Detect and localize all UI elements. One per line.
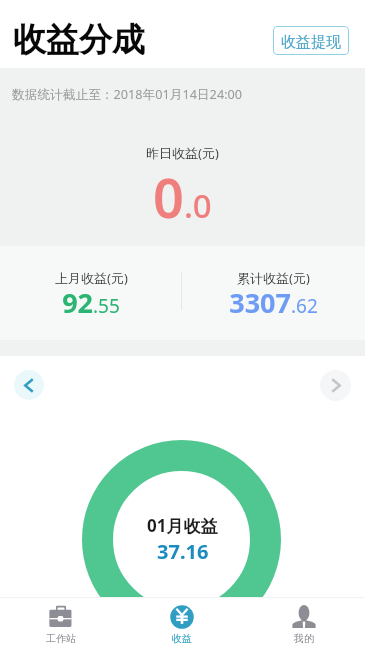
button[interactable]: 我的: [243, 597, 365, 650]
staticText: 工作站: [46, 632, 76, 645]
staticText: 累计收益(元): [237, 269, 310, 287]
button[interactable]: 收益提现: [273, 26, 349, 55]
staticText: 01月收益: [147, 514, 218, 537]
staticText: 昨日收益(元): [146, 144, 219, 162]
button[interactable]: Previous month: [14, 370, 44, 400]
staticText: 3307.62: [229, 284, 318, 321]
staticText: 我的: [294, 632, 314, 645]
staticText: 数据统计截止至：2018年01月14日24:00: [12, 85, 243, 102]
staticText: 92.55: [62, 284, 120, 321]
staticText: 37.16: [157, 538, 209, 565]
staticText: 上月收益(元): [55, 269, 128, 287]
staticText: 收益分成: [13, 19, 145, 61]
button[interactable]: 收益: [121, 597, 243, 650]
staticText: 0.0: [153, 160, 212, 234]
staticText: 收益提现: [281, 33, 341, 52]
button[interactable]: Next month: [320, 370, 351, 401]
button[interactable]: 工作站: [0, 597, 121, 650]
staticText: 收益: [172, 632, 192, 645]
